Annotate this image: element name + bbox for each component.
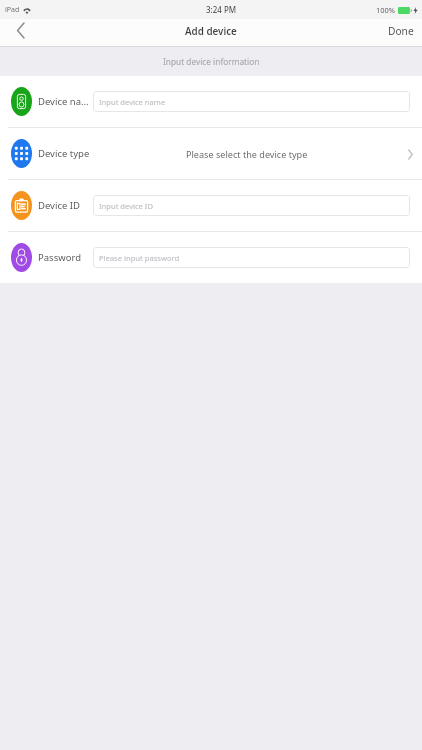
staticText: Please select the device type — [186, 148, 308, 160]
staticText: Device type — [38, 147, 90, 160]
staticText: 100% — [376, 5, 396, 15]
staticText: Device ID — [38, 199, 80, 212]
button[interactable]: Please input password — [93, 247, 410, 268]
button[interactable]: Input device ID — [93, 195, 410, 216]
staticText: iPad — [5, 5, 20, 15]
staticText: Done — [388, 24, 414, 38]
staticText: Input device ID — [99, 201, 153, 211]
button[interactable]: Device na... — [0, 76, 422, 127]
button[interactable]: Input device name — [93, 91, 410, 112]
button[interactable]: Device ID — [0, 180, 422, 231]
staticText: Device na... — [38, 95, 89, 108]
staticText: Please input password — [99, 253, 180, 263]
staticText: Input device information — [163, 56, 260, 67]
button[interactable]: Device type — [0, 128, 422, 179]
button[interactable]: Done — [388, 24, 414, 38]
staticText: 3:24 PM — [206, 4, 237, 15]
button[interactable]: Password — [0, 232, 422, 283]
button[interactable]: Back — [0, 19, 40, 47]
staticText: Add device — [185, 25, 237, 38]
staticText: Password — [38, 251, 81, 264]
staticText: Input device name — [99, 97, 166, 107]
